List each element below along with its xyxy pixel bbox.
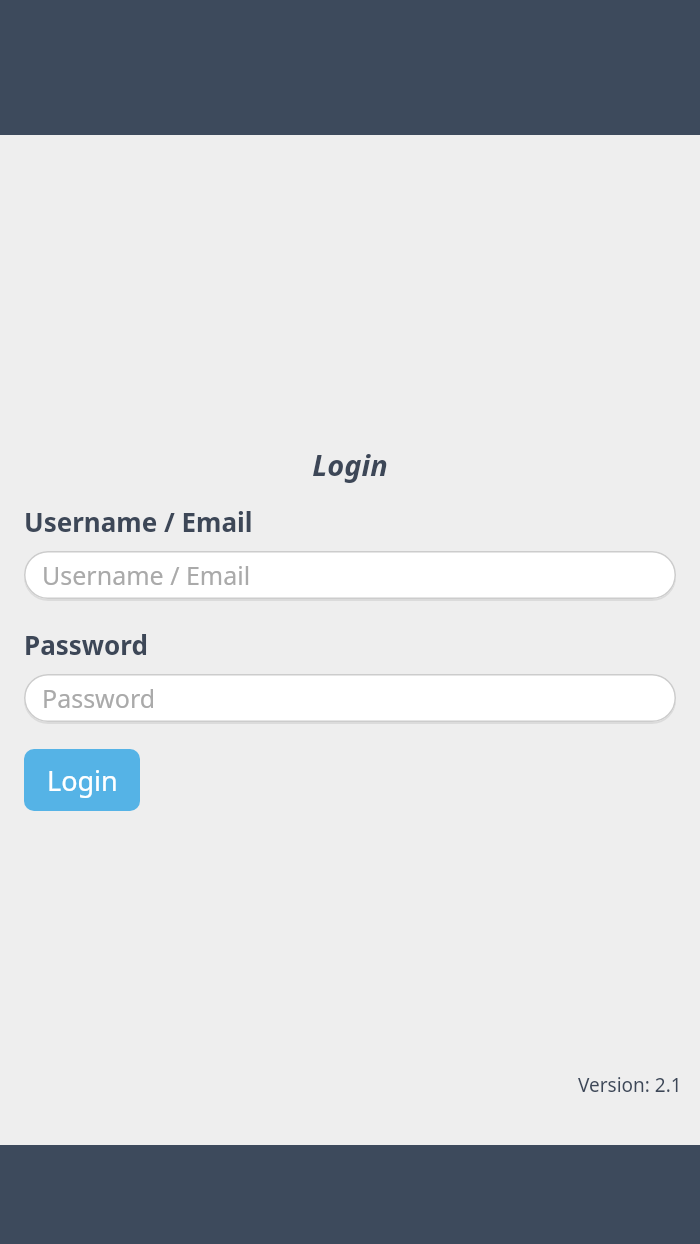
button[interactable]: Login [24, 749, 140, 811]
staticText: Username / Email [42, 558, 251, 592]
staticText: Login [47, 762, 118, 799]
button[interactable]: Username / Email [24, 551, 676, 599]
staticText: Login [24, 445, 676, 484]
staticText: Version: 2.1 [578, 1072, 682, 1098]
staticText: Username / Email [24, 504, 253, 539]
staticText: Password [24, 627, 148, 662]
staticText: Password [42, 681, 156, 715]
button[interactable]: Password [24, 674, 676, 722]
